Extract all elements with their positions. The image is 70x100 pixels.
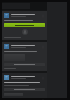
button[interactable] [4,63,45,66]
other: Source [4,44,9,49]
other: Source [4,75,9,80]
button[interactable]: Source [4,44,45,49]
button[interactable] [4,23,45,27]
button[interactable]: Source [2,11,47,40]
other: Source [4,13,9,18]
button[interactable]: Source [2,73,47,98]
button[interactable] [4,88,45,91]
button[interactable]: Source [4,75,45,80]
button[interactable]: Source [4,13,45,18]
other: Profile [22,29,28,35]
button[interactable]: Source [2,42,47,71]
button[interactable] [2,2,47,10]
